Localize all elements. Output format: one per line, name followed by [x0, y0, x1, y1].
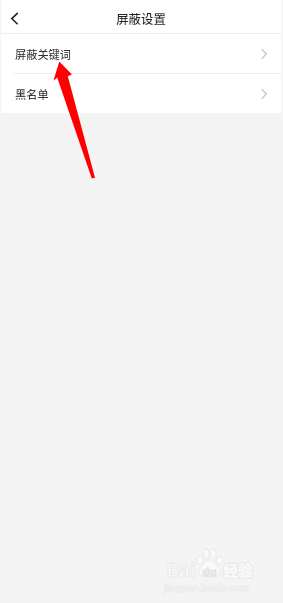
staticText: 黑名单	[15, 86, 49, 102]
button[interactable]: 屏蔽关键词	[0, 34, 283, 73]
button[interactable]: 黑名单	[0, 74, 283, 113]
button[interactable]: Back	[0, 2, 30, 32]
staticText: 屏蔽设置	[116, 10, 166, 28]
staticText: 屏蔽关键词	[15, 46, 71, 62]
